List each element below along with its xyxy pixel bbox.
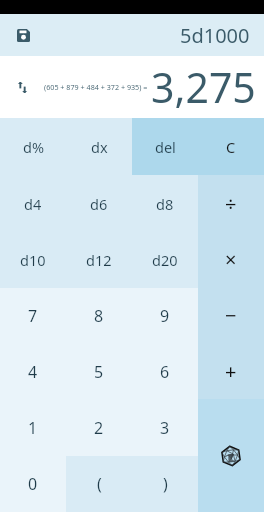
- staticText: ): [163, 473, 168, 495]
- staticText: 3: [160, 417, 170, 439]
- staticText: 3,275: [151, 59, 256, 115]
- button[interactable]: −: [198, 287, 264, 343]
- button[interactable]: ): [132, 456, 198, 512]
- staticText: +: [225, 358, 237, 385]
- staticText: d%: [23, 137, 44, 157]
- staticText: d8: [156, 194, 174, 214]
- button[interactable]: d20: [132, 232, 198, 288]
- button[interactable]: d%: [0, 118, 66, 175]
- staticText: ÷: [225, 190, 237, 217]
- button[interactable]: 8: [66, 288, 132, 344]
- button[interactable]: ×: [198, 231, 264, 287]
- button[interactable]: (: [66, 456, 132, 512]
- button[interactable]: Roll dice: [198, 399, 264, 512]
- staticText: (605 + 879 + 484 + 372 + 935) =: [44, 82, 148, 92]
- staticText: 0: [28, 473, 38, 495]
- staticText: 6: [160, 361, 170, 383]
- staticText: −: [225, 302, 237, 329]
- button[interactable]: Swap: [16, 81, 28, 93]
- button[interactable]: 5: [66, 344, 132, 400]
- button[interactable]: d4: [0, 175, 66, 232]
- staticText: d6: [90, 194, 108, 214]
- button[interactable]: Save: [13, 25, 33, 45]
- staticText: 2: [94, 417, 104, 439]
- button[interactable]: +: [198, 343, 264, 399]
- button[interactable]: 7: [0, 288, 66, 344]
- button[interactable]: d8: [132, 175, 198, 232]
- button[interactable]: 4: [0, 344, 66, 400]
- staticText: ×: [225, 246, 237, 273]
- button[interactable]: del: [132, 118, 198, 175]
- staticText: d10: [20, 250, 46, 270]
- button[interactable]: ÷: [198, 175, 264, 231]
- button[interactable]: 0: [0, 456, 66, 512]
- button[interactable]: 1: [0, 400, 66, 456]
- button[interactable]: 3: [132, 400, 198, 456]
- staticText: dx: [91, 137, 108, 157]
- staticText: 1: [28, 417, 38, 439]
- button[interactable]: C: [198, 118, 264, 175]
- staticText: C: [226, 137, 236, 157]
- button[interactable]: d10: [0, 232, 66, 288]
- button[interactable]: 9: [132, 288, 198, 344]
- button[interactable]: 6: [132, 344, 198, 400]
- staticText: d20: [152, 250, 178, 270]
- staticText: (: [97, 473, 102, 495]
- button[interactable]: d6: [66, 175, 132, 232]
- staticText: d4: [24, 194, 42, 214]
- button[interactable]: d12: [66, 232, 132, 288]
- staticText: del: [155, 137, 176, 157]
- staticText: 5: [94, 361, 104, 383]
- staticText: 5d1000: [180, 22, 250, 49]
- staticText: 7: [28, 305, 38, 327]
- button[interactable]: dx: [66, 118, 132, 175]
- staticText: 9: [160, 305, 170, 327]
- staticText: d12: [86, 250, 112, 270]
- staticText: 4: [28, 361, 38, 383]
- button[interactable]: 2: [66, 400, 132, 456]
- staticText: 8: [94, 305, 104, 327]
